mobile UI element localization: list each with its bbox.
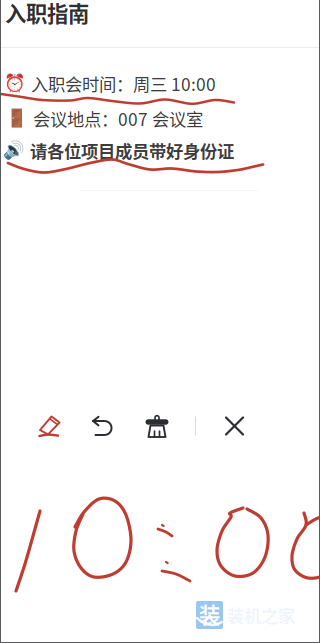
- staticText: ⏰: [4, 73, 26, 94]
- staticText: 入职指南: [5, 0, 89, 28]
- staticText: 会议地点：007 会议室: [33, 106, 203, 131]
- button[interactable]: Clear all: [144, 413, 170, 439]
- button[interactable]: Close: [225, 416, 244, 435]
- staticText: 🚪: [6, 108, 28, 129]
- staticText: 装机之家: [227, 602, 295, 628]
- button[interactable]: Pen: [38, 414, 62, 438]
- button[interactable]: Undo: [90, 415, 117, 437]
- staticText: 入职会时间：周三 10:00: [31, 71, 216, 96]
- staticText: 🔊: [3, 140, 25, 161]
- staticText: 装: [199, 599, 220, 629]
- staticText: 请各位项目成员带好身份证: [30, 138, 234, 163]
